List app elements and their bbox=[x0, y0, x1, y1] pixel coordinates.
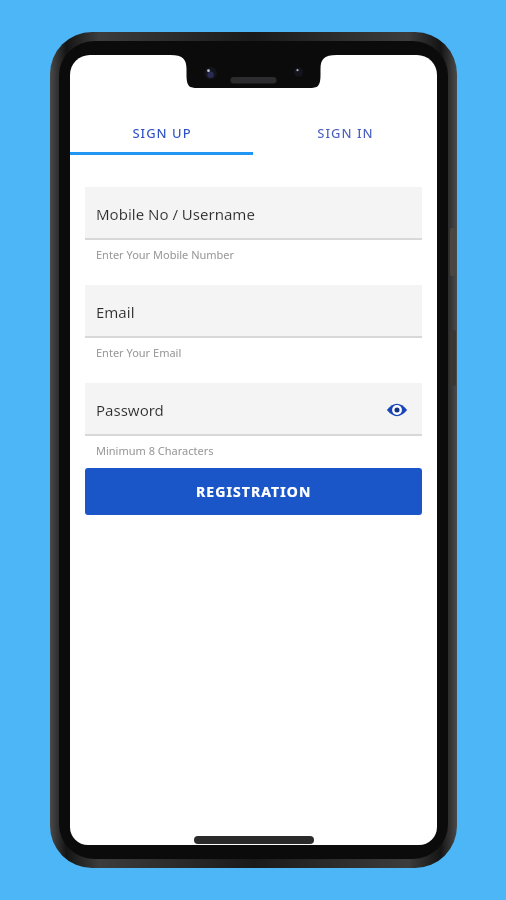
staticText: Email bbox=[96, 302, 135, 322]
staticText: REGISTRATION bbox=[196, 482, 312, 501]
staticText: Password bbox=[96, 400, 164, 420]
button[interactable]: REGISTRATION bbox=[85, 468, 422, 515]
button[interactable]: Password bbox=[85, 383, 422, 436]
button[interactable]: Email bbox=[85, 285, 422, 338]
staticText: Mobile No / Username bbox=[96, 204, 255, 224]
staticText: Enter Your Mobile Number bbox=[96, 247, 235, 262]
button[interactable]: Show password bbox=[384, 397, 410, 423]
staticText: SIGN UP bbox=[132, 124, 192, 142]
staticText: SIGN IN bbox=[317, 124, 374, 142]
staticText: Enter Your Email bbox=[96, 345, 182, 360]
button[interactable]: SIGN IN bbox=[253, 110, 437, 155]
staticText: Minimum 8 Characters bbox=[96, 443, 214, 458]
button[interactable]: SIGN UP bbox=[70, 110, 253, 155]
button[interactable]: Mobile No / Username bbox=[85, 187, 422, 240]
